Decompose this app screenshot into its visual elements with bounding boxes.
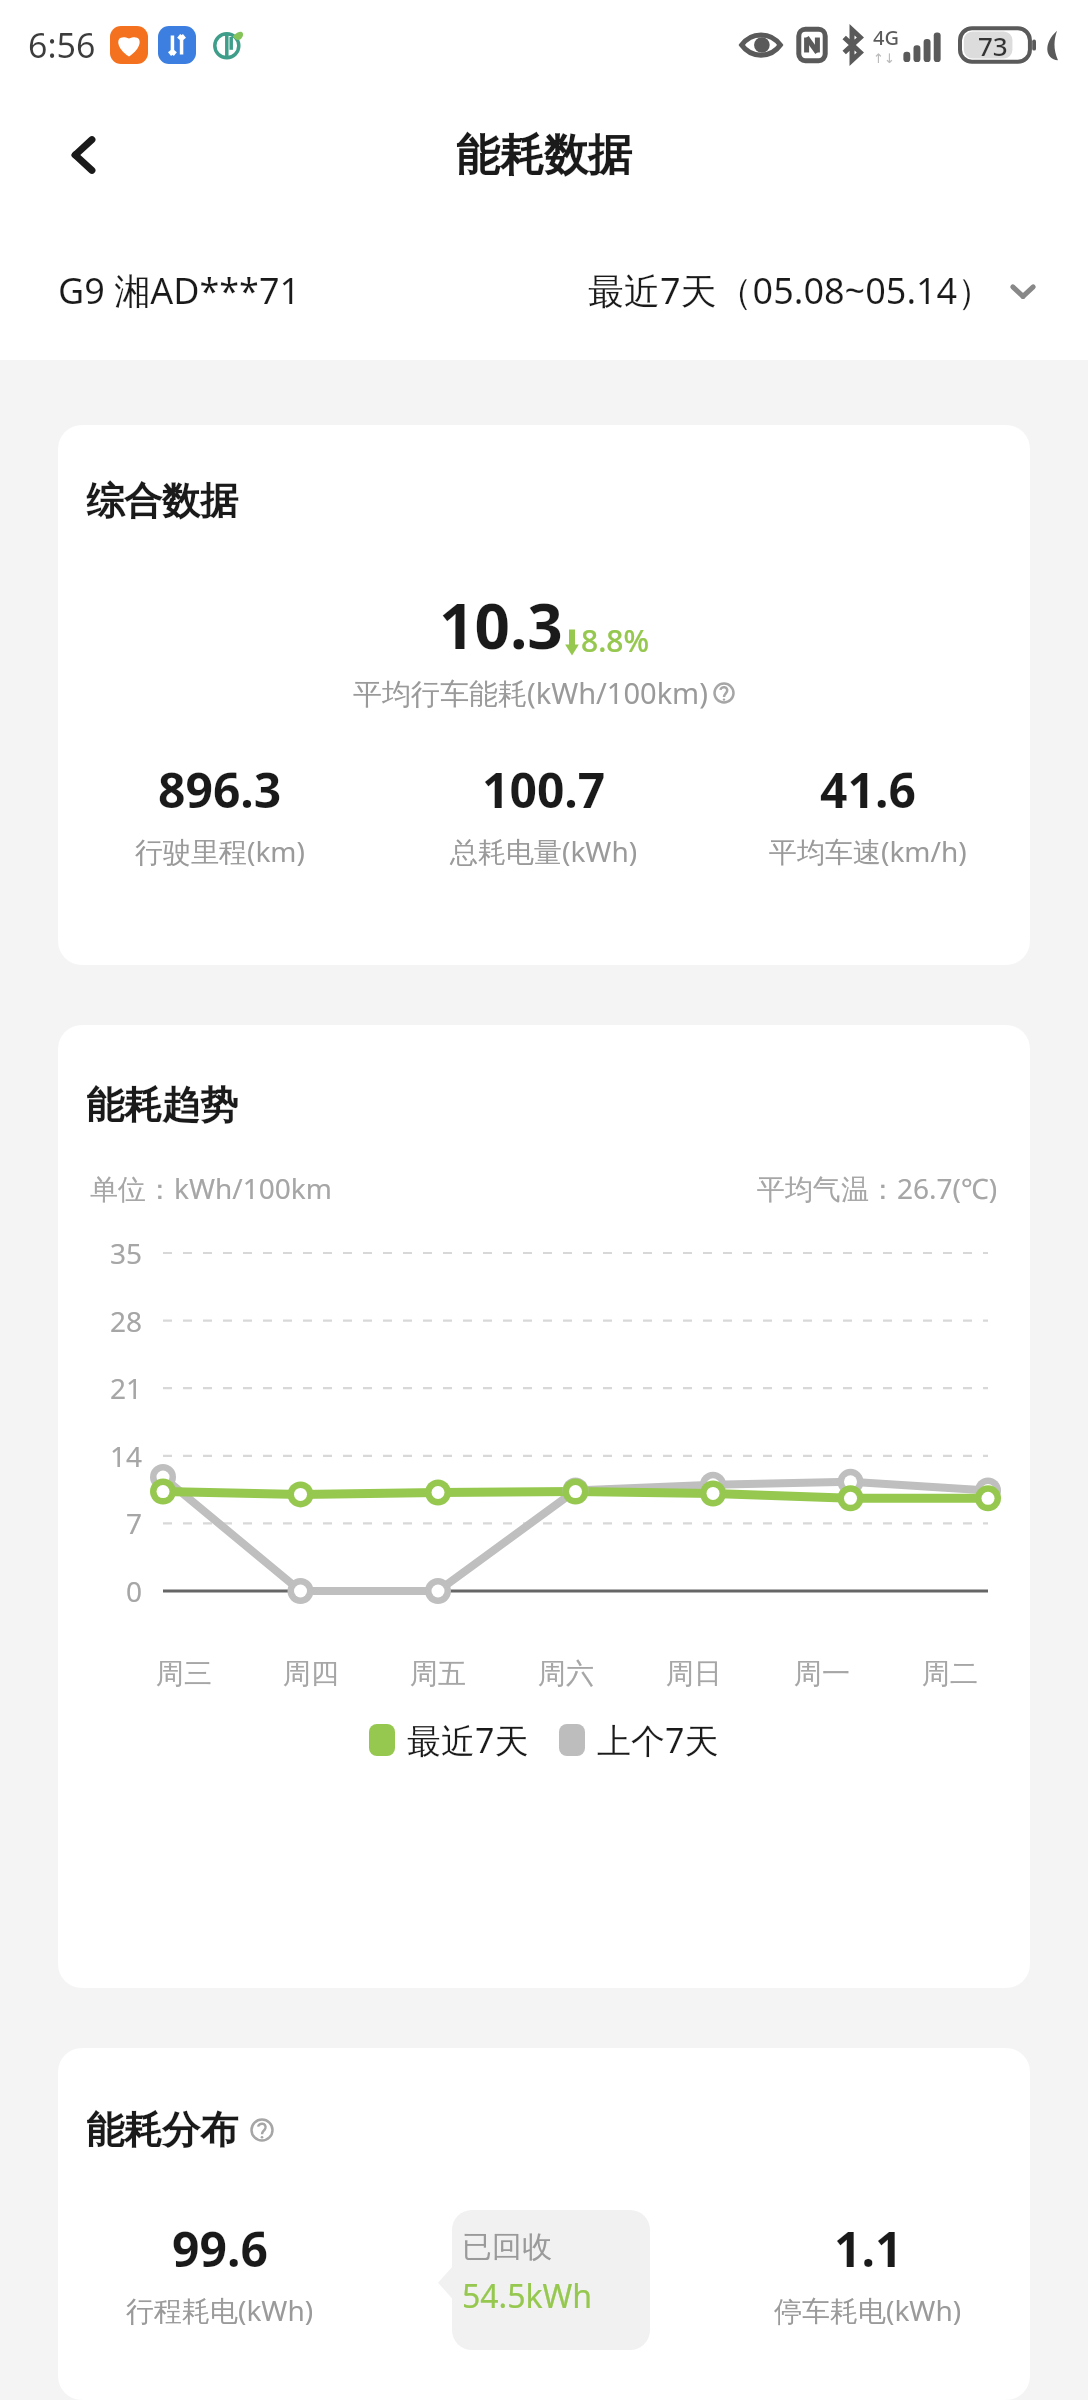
staticText: 7 (58, 1504, 142, 1542)
staticText: 综合数据 (86, 477, 238, 525)
button[interactable]: 最近7天（05.08~05.14） (588, 266, 1040, 315)
staticText: 最近7天（05.08~05.14） (588, 266, 994, 315)
staticText: 896.3 (158, 757, 282, 822)
staticText: 35 (58, 1234, 142, 1272)
staticText: 54.5kWh (462, 2274, 593, 2318)
staticText: 99.6 (172, 2216, 268, 2281)
staticText: 4G (873, 24, 899, 51)
staticText: 周五 (410, 1656, 466, 1691)
staticText: 周日 (666, 1656, 722, 1691)
staticText: 周六 (538, 1656, 594, 1691)
staticText: 1.1 (834, 2216, 903, 2281)
staticText: G9 湘AD***71 (58, 266, 301, 315)
staticText: 已回收 (462, 2228, 552, 2266)
staticText: 停车耗电(kWh) (774, 2291, 962, 2329)
staticText: 0 (58, 1572, 142, 1610)
staticText: 平均气温：26.7(℃) (757, 1169, 998, 1207)
staticText: 周三 (156, 1656, 212, 1691)
staticText: 10.3 (439, 583, 563, 667)
staticText: 平均车速(km/h) (769, 832, 967, 870)
staticText: 周二 (922, 1656, 978, 1691)
button[interactable]: Back (30, 101, 138, 209)
staticText: 8.8% (581, 620, 650, 661)
staticText: 6:56 (28, 22, 96, 68)
staticText: 周一 (794, 1656, 850, 1691)
staticText: ↑↓ (873, 51, 895, 66)
staticText: 21 (58, 1369, 142, 1407)
staticText: 41.6 (820, 757, 916, 822)
staticText: 能耗分布 (86, 2106, 238, 2154)
staticText: 73 (978, 28, 1008, 63)
staticText: 总耗电量(kWh) (450, 832, 638, 870)
staticText: 28 (58, 1302, 142, 1340)
staticText: 最近7天 (407, 1717, 529, 1763)
staticText: 14 (58, 1437, 142, 1475)
staticText: 周四 (283, 1656, 339, 1691)
staticText: 能耗趋势 (86, 1081, 238, 1129)
staticText: 平均行车能耗(kWh/100km) (353, 673, 708, 713)
staticText: 上个7天 (597, 1717, 719, 1763)
staticText: 100.7 (482, 757, 606, 822)
staticText: 行程耗电(kWh) (126, 2291, 314, 2329)
staticText: 单位：kWh/100km (90, 1169, 332, 1207)
staticText: 行驶里程(km) (135, 832, 305, 870)
staticText: 能耗数据 (456, 128, 632, 183)
